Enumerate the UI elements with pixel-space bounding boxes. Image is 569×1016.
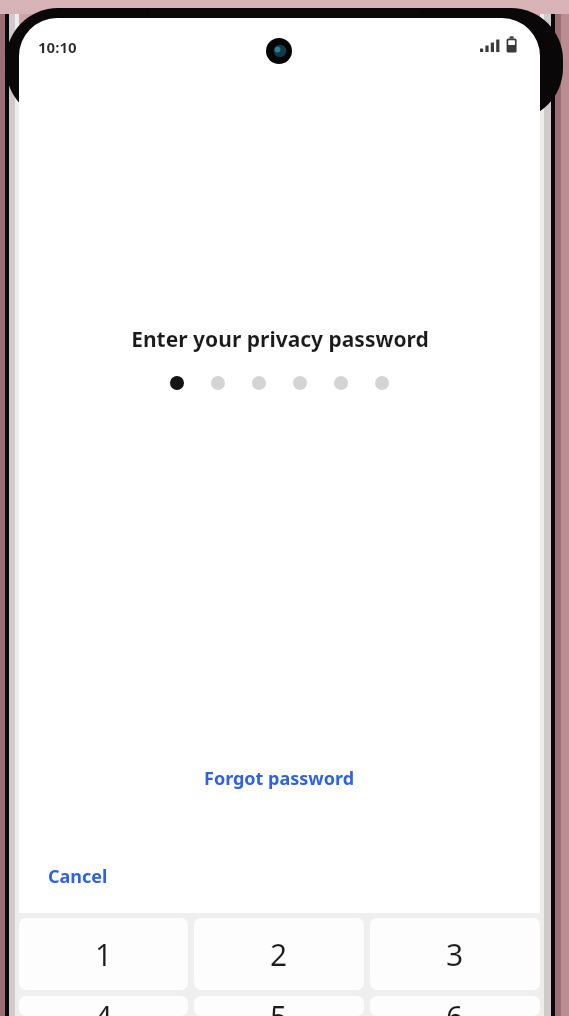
staticText: 3 xyxy=(446,934,464,975)
button[interactable]: Digit 4 xyxy=(19,996,188,1016)
staticText: 2 xyxy=(270,934,288,975)
staticText: 10:10 xyxy=(38,37,77,57)
button[interactable]: Digit 1 xyxy=(19,918,188,990)
button[interactable]: Digit 2 xyxy=(194,918,364,990)
staticText: Cancel xyxy=(48,864,108,889)
button[interactable]: Forgot password xyxy=(194,760,365,797)
button[interactable]: Digit 3 xyxy=(370,918,540,990)
button[interactable]: Digit 5 xyxy=(194,996,364,1016)
staticText: 1 xyxy=(95,934,113,975)
staticText: 4 xyxy=(95,996,113,1016)
staticText: Enter your privacy password xyxy=(131,325,429,354)
staticText: 6 xyxy=(446,996,464,1016)
staticText: 5 xyxy=(270,996,288,1016)
button[interactable]: Cancel xyxy=(37,857,119,896)
staticText: Forgot password xyxy=(204,766,355,791)
button[interactable]: Digit 6 xyxy=(370,996,540,1016)
